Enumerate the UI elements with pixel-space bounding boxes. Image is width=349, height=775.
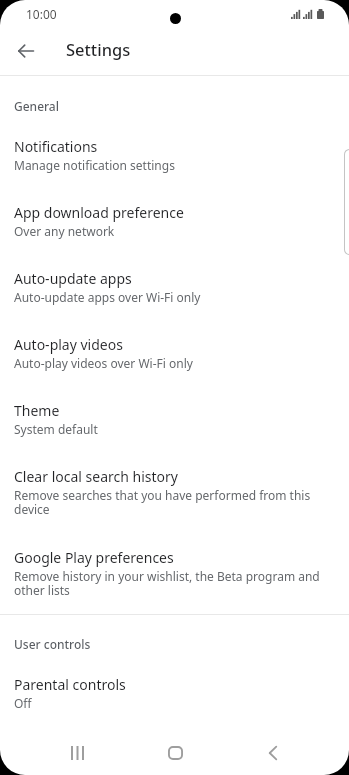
staticText: Remove searches that you have performed …	[14, 487, 329, 518]
staticText: Parental controls	[14, 675, 126, 694]
button[interactable]: Back	[249, 729, 297, 775]
button[interactable]: Auto-play videos	[0, 320, 349, 386]
staticText: General	[14, 98, 59, 114]
button[interactable]: Clear local search history	[0, 452, 349, 533]
staticText: App download preference	[14, 203, 184, 222]
staticText: 10:00	[26, 6, 57, 22]
staticText: Auto-play videos over Wi-Fi only	[14, 355, 193, 371]
staticText: Off	[14, 695, 32, 711]
staticText: Auto-update apps over Wi-Fi only	[14, 289, 201, 305]
button[interactable]: Theme	[0, 386, 349, 452]
staticText: Theme	[14, 401, 60, 420]
button[interactable]: Notifications	[0, 122, 349, 188]
staticText: Remove history in your wishlist, the Bet…	[14, 568, 329, 599]
staticText: Auto-update apps	[14, 269, 132, 288]
staticText: System default	[14, 421, 98, 437]
button[interactable]: Home	[151, 729, 199, 775]
button[interactable]: Navigate up	[10, 35, 42, 67]
button[interactable]: Parental controls	[0, 660, 349, 726]
button[interactable]: Auto-update apps	[0, 254, 349, 320]
staticText: Auto-play videos	[14, 335, 123, 354]
staticText: Settings	[66, 38, 131, 60]
button[interactable]: App download preference	[0, 188, 349, 254]
staticText: Clear local search history	[14, 467, 178, 486]
staticText: User controls	[14, 636, 91, 652]
button[interactable]: Recent apps	[53, 729, 101, 775]
staticText: Over any network	[14, 223, 115, 239]
staticText: Notifications	[14, 137, 98, 156]
staticText: Manage notification settings	[14, 157, 175, 173]
staticText: Google Play preferences	[14, 548, 174, 567]
button[interactable]: Google Play preferences	[0, 533, 349, 614]
